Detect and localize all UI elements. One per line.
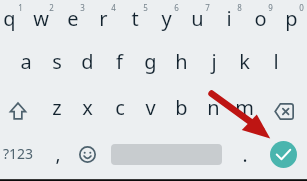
staticText: f (116, 48, 123, 75)
button[interactable] (119, 0, 150, 43)
staticText: u (191, 5, 204, 32)
staticText: j (211, 48, 217, 75)
staticText: a (20, 48, 32, 75)
button[interactable]: Shift (0, 89, 34, 135)
button[interactable] (166, 43, 197, 89)
button[interactable] (103, 43, 134, 89)
staticText: 0 (299, 2, 304, 13)
staticText: k (239, 48, 250, 75)
staticText: g (144, 48, 157, 75)
button[interactable] (41, 43, 72, 89)
button[interactable] (25, 0, 56, 43)
button[interactable] (0, 0, 25, 43)
staticText: n (207, 94, 220, 121)
staticText: 9 (268, 2, 273, 13)
staticText: e (67, 5, 79, 32)
button[interactable] (135, 43, 166, 89)
button[interactable]: Enter (270, 141, 297, 168)
staticText: m (235, 94, 254, 121)
button[interactable] (166, 89, 197, 135)
button[interactable] (57, 0, 88, 43)
staticText: d (81, 48, 94, 75)
button[interactable] (229, 135, 260, 179)
button[interactable]: Backspace (264, 89, 304, 135)
button[interactable] (88, 0, 119, 43)
staticText: , (55, 141, 61, 167)
button[interactable] (182, 0, 213, 43)
button[interactable] (213, 0, 244, 43)
staticText: i (226, 5, 232, 32)
staticText: t (131, 5, 139, 32)
staticText: 4 (111, 2, 116, 13)
button[interactable] (72, 89, 103, 135)
staticText: 7 (205, 2, 210, 13)
button[interactable]: Emoji (72, 135, 103, 179)
button[interactable] (276, 0, 307, 43)
button[interactable] (244, 0, 275, 43)
staticText: o (254, 5, 267, 32)
staticText: v (145, 94, 156, 121)
staticText: 5 (143, 2, 148, 13)
staticText: r (99, 5, 108, 32)
button[interactable] (10, 43, 41, 89)
button[interactable] (42, 135, 73, 179)
staticText: 3 (80, 2, 85, 13)
staticText: y (161, 5, 172, 32)
staticText: . (242, 142, 248, 168)
staticText: 6 (174, 2, 179, 13)
staticText: w (33, 5, 49, 32)
staticText: c (115, 94, 125, 121)
staticText: 1 (18, 2, 23, 13)
staticText: s (52, 48, 62, 75)
staticText: h (175, 48, 188, 75)
staticText: q (3, 5, 16, 32)
staticText: b (175, 94, 188, 121)
button[interactable] (229, 43, 260, 89)
button[interactable] (197, 43, 228, 89)
staticText: l (273, 48, 279, 75)
button[interactable] (150, 0, 181, 43)
button[interactable] (41, 89, 72, 135)
button[interactable] (260, 43, 291, 89)
button[interactable] (72, 43, 103, 89)
staticText: p (285, 5, 298, 32)
button[interactable] (229, 89, 260, 135)
button[interactable] (103, 89, 134, 135)
button[interactable] (135, 89, 166, 135)
staticText: ?123 (3, 144, 34, 163)
staticText: 8 (237, 2, 242, 13)
staticText: z (52, 94, 62, 121)
staticText: x (82, 94, 93, 121)
staticText: 2 (49, 2, 54, 13)
button[interactable] (197, 89, 228, 135)
button[interactable]: ?123 (0, 135, 38, 179)
